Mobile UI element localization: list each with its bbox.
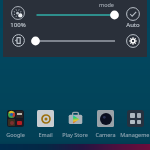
staticText: Auto xyxy=(123,21,143,29)
staticText: Management xyxy=(120,131,150,138)
button[interactable]: Play Store xyxy=(60,110,90,138)
button[interactable]: Email xyxy=(30,110,60,138)
staticText: Email xyxy=(38,131,53,138)
button[interactable]: Sound xyxy=(12,34,25,47)
staticText: Camera xyxy=(95,131,116,138)
button[interactable]: Auto brightness xyxy=(126,7,140,21)
staticText: Play Store xyxy=(62,131,88,138)
button[interactable]: Brightness xyxy=(11,6,25,20)
button[interactable]: Camera xyxy=(90,110,120,138)
button[interactable]: Settings xyxy=(126,34,140,48)
staticText: Google xyxy=(6,131,25,138)
button[interactable]: Management xyxy=(120,110,150,138)
staticText: mode xyxy=(99,1,114,8)
staticText: 100% xyxy=(7,21,29,29)
button[interactable]: Google xyxy=(0,110,30,138)
